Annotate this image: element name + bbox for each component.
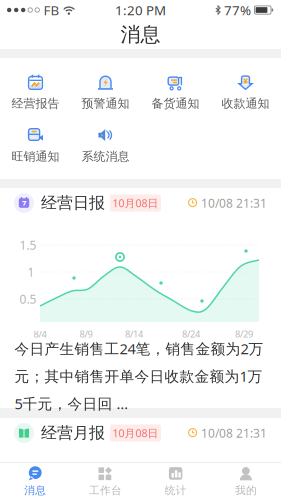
staticText: 8/29 bbox=[235, 328, 253, 340]
staticText: 10/08 21:31 bbox=[201, 195, 267, 211]
button[interactable]: 备货通知 bbox=[140, 70, 210, 114]
button[interactable]: 系统消息 bbox=[70, 123, 140, 167]
staticText: 旺销通知 bbox=[11, 149, 59, 164]
staticText: 8/9 bbox=[79, 328, 92, 340]
staticText: 工作台 bbox=[89, 484, 122, 497]
button[interactable]: 消息 bbox=[0, 20, 281, 49]
staticText: 我的 bbox=[235, 484, 257, 497]
staticText: 今日产生销售工24笔，销售金额为2万元；其中销售开单今日收款金额为1万5千元，今… bbox=[14, 339, 263, 413]
staticText: 收款通知 bbox=[221, 96, 269, 111]
staticText: 0.5 bbox=[19, 291, 36, 307]
staticText: 10月08日 bbox=[112, 196, 158, 210]
staticText: 8/24 bbox=[182, 328, 200, 340]
staticText: 预警通知 bbox=[81, 96, 129, 111]
staticText: 8/4 bbox=[33, 328, 46, 340]
button[interactable]: 我的 bbox=[211, 463, 281, 500]
button[interactable]: 统计 bbox=[140, 463, 211, 500]
staticText: 经营月报 bbox=[41, 423, 105, 443]
staticText: 备货通知 bbox=[151, 96, 199, 111]
staticText: 77% bbox=[224, 1, 251, 19]
staticText: 系统消息 bbox=[81, 149, 129, 164]
staticText: 1:20 PM bbox=[115, 1, 166, 19]
staticText: 经营日报 bbox=[41, 193, 105, 213]
button[interactable]: 消息 bbox=[0, 463, 70, 500]
button[interactable]: 旺销通知 bbox=[0, 123, 70, 167]
button[interactable]: 工作台 bbox=[70, 463, 140, 500]
button[interactable]: 预警通知 bbox=[70, 70, 140, 114]
staticText: 统计 bbox=[165, 484, 187, 497]
staticText: 10/08 21:31 bbox=[201, 425, 267, 441]
staticText: FB bbox=[43, 1, 59, 19]
button[interactable]: 经营报告 bbox=[0, 70, 70, 114]
button[interactable]: 收款通知 bbox=[210, 70, 280, 114]
staticText: 消息 bbox=[24, 484, 46, 497]
staticText: 10月08日 bbox=[112, 426, 158, 440]
staticText: 1 bbox=[27, 264, 34, 280]
staticText: 消息 bbox=[120, 22, 160, 47]
staticText: 1.5 bbox=[19, 237, 36, 253]
staticText: 经营报告 bbox=[11, 96, 59, 111]
staticText: 8/14 bbox=[125, 328, 143, 340]
